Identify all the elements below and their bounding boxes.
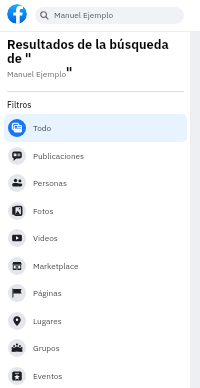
- staticText: Resultados de la búsqueda de " Manuel Ej…: [7, 36, 184, 81]
- staticText: Eventos: [33, 371, 63, 382]
- button[interactable]: Fotos: [4, 197, 187, 225]
- button[interactable]: Manuel Ejemplo: [35, 7, 184, 24]
- button[interactable]: Personas: [4, 169, 187, 197]
- button[interactable]: Lugares: [4, 307, 187, 335]
- staticText: Videos: [33, 233, 58, 244]
- staticText: Páginas: [33, 288, 62, 299]
- button[interactable]: Marketplace: [4, 252, 187, 280]
- staticText: Manuel Ejemplo: [54, 10, 113, 21]
- staticText: Publicaciones: [33, 151, 85, 162]
- staticText: Personas: [33, 178, 67, 189]
- button[interactable]: Facebook home: [7, 4, 27, 24]
- staticText: Grupos: [33, 343, 60, 354]
- button[interactable]: Páginas: [4, 279, 187, 307]
- staticText: Todo: [33, 123, 52, 134]
- staticText: Lugares: [33, 316, 62, 327]
- staticText: Marketplace: [33, 261, 79, 272]
- button[interactable]: Eventos: [4, 362, 187, 388]
- button[interactable]: Videos: [4, 224, 187, 252]
- staticText: Fotos: [33, 206, 54, 217]
- staticText: Filtros: [7, 99, 32, 110]
- button[interactable]: Publicaciones: [4, 142, 187, 170]
- button[interactable]: Grupos: [4, 334, 187, 362]
- button[interactable]: Todo: [4, 114, 187, 142]
